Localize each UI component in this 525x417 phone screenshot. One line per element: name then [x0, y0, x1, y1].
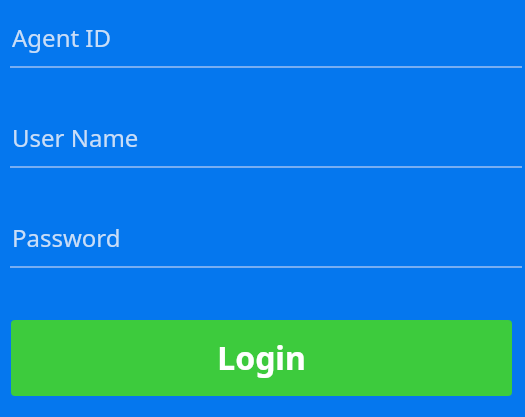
button[interactable]: User Name: [0, 100, 525, 200]
button[interactable]: Agent ID: [0, 0, 525, 100]
staticText: Agent ID: [12, 21, 112, 54]
staticText: User Name: [12, 121, 139, 154]
button[interactable]: Password: [0, 200, 525, 300]
button[interactable]: Login: [11, 320, 512, 396]
staticText: Login: [217, 336, 306, 380]
staticText: Password: [12, 221, 121, 254]
